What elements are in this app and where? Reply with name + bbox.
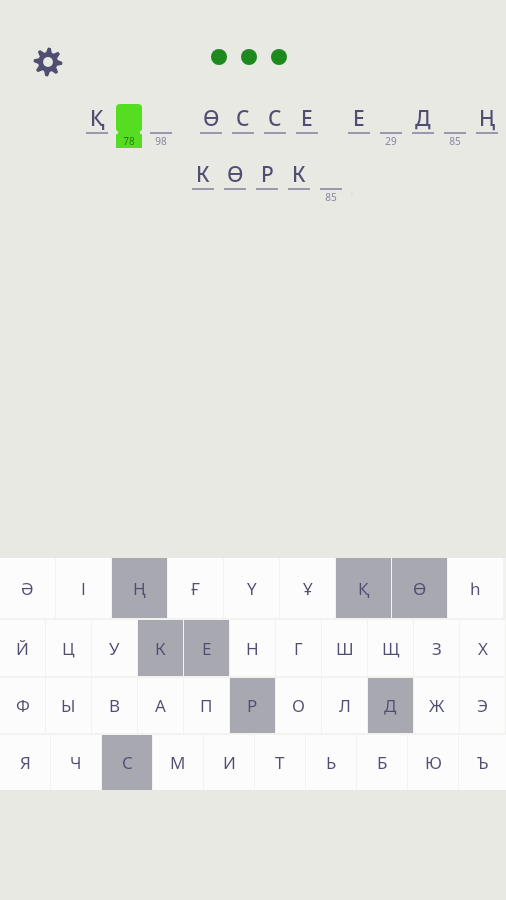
button[interactable]: І — [56, 558, 111, 618]
button[interactable]: Г — [276, 620, 321, 676]
button[interactable]: Қ — [84, 104, 110, 148]
staticText: Д — [415, 104, 431, 132]
staticText: С — [268, 104, 282, 132]
button[interactable]: В — [92, 678, 137, 733]
staticText: Ц — [62, 637, 75, 660]
staticText: Ъ — [477, 751, 489, 774]
staticText: Г — [294, 637, 303, 660]
button[interactable]: Settings — [30, 44, 66, 80]
staticText: Ү — [247, 577, 257, 600]
button[interactable]: Т — [255, 735, 305, 790]
button[interactable]: М — [153, 735, 203, 790]
staticText: . — [350, 180, 354, 199]
button[interactable]: Қ — [336, 558, 391, 618]
staticText: Л — [339, 694, 351, 717]
button[interactable]: Е — [346, 104, 372, 148]
staticText: Ө — [413, 577, 427, 600]
staticText: Ә — [21, 577, 34, 600]
button[interactable]: К — [190, 160, 216, 204]
button[interactable]: Ц — [46, 620, 91, 676]
button[interactable]: С — [230, 104, 256, 148]
staticText: Қ — [358, 577, 370, 600]
button[interactable]: Й — [0, 620, 45, 676]
staticText: Ф — [16, 694, 30, 717]
button[interactable]: П — [184, 678, 229, 733]
button[interactable]: Ө — [392, 558, 447, 618]
button[interactable]: Ы — [46, 678, 91, 733]
button[interactable]: К — [286, 160, 312, 204]
button[interactable]: Ң — [112, 558, 167, 618]
button[interactable]: Ъ — [459, 735, 506, 790]
button[interactable]: Д — [410, 104, 436, 148]
staticText: Б — [377, 751, 388, 774]
button[interactable]: Ч — [51, 735, 101, 790]
button[interactable]: Ю — [408, 735, 458, 790]
button[interactable]: Л — [322, 678, 367, 733]
staticText: З — [432, 637, 442, 660]
button[interactable]: Ө — [222, 160, 248, 204]
button[interactable]: С — [102, 735, 152, 790]
button[interactable]: Ш — [322, 620, 367, 676]
staticText: А — [155, 694, 166, 717]
staticText: Ж — [429, 694, 445, 717]
button[interactable]: Ф — [0, 678, 45, 733]
button[interactable]: Ь — [306, 735, 356, 790]
staticText: Ң — [479, 104, 496, 132]
button[interactable]: һ — [448, 558, 503, 618]
button[interactable]: Э — [460, 678, 505, 733]
button[interactable] — [211, 49, 287, 65]
button[interactable]: С — [262, 104, 288, 148]
button[interactable]: 98 — [148, 104, 174, 148]
staticText: Е — [202, 637, 212, 660]
button[interactable]: Н — [230, 620, 275, 676]
button[interactable]: А — [138, 678, 183, 733]
button[interactable]: Ү — [224, 558, 279, 618]
staticText: Э — [477, 694, 488, 717]
button[interactable]: Е — [184, 620, 229, 676]
button[interactable]: 85 — [318, 160, 344, 204]
staticText: И — [223, 751, 236, 774]
staticText: Ю — [425, 751, 442, 774]
staticText: Ғ — [191, 577, 201, 600]
staticText: Қ — [90, 104, 105, 132]
button[interactable]: Ж — [414, 678, 459, 733]
staticText: Р — [261, 160, 274, 188]
staticText: 29 — [385, 134, 397, 148]
button[interactable]: Ұ — [280, 558, 335, 618]
button[interactable]: Щ — [368, 620, 413, 676]
button[interactable]: З — [414, 620, 459, 676]
staticText: 98 — [155, 134, 167, 148]
button[interactable]: 29 — [378, 104, 404, 148]
staticText: Р — [247, 694, 258, 717]
staticText: Ө — [227, 160, 244, 188]
button[interactable]: Ң — [474, 104, 500, 148]
button[interactable]: Ғ — [168, 558, 223, 618]
staticText: Ұ — [303, 577, 313, 600]
button[interactable]: У — [92, 620, 137, 676]
button[interactable]: Я — [0, 735, 50, 790]
button[interactable]: Ө — [198, 104, 224, 148]
button[interactable]: Ә — [0, 558, 55, 618]
button[interactable]: Р — [254, 160, 280, 204]
staticText: Ш — [336, 637, 354, 660]
button[interactable]: 85 — [442, 104, 468, 148]
button[interactable]: Р — [230, 678, 275, 733]
button[interactable]: Д — [368, 678, 413, 733]
staticText: К — [155, 637, 166, 660]
staticText: П — [200, 694, 213, 717]
button[interactable]: О — [276, 678, 321, 733]
button[interactable]: Б — [357, 735, 407, 790]
button[interactable]: К — [138, 620, 183, 676]
staticText: К — [196, 160, 210, 188]
staticText: Е — [301, 104, 313, 132]
staticText: І — [81, 577, 86, 600]
staticText: Е — [353, 104, 365, 132]
button[interactable]: Х — [460, 620, 505, 676]
staticText: М — [170, 751, 186, 774]
staticText: Ч — [70, 751, 82, 774]
button[interactable]: 78 — [116, 104, 142, 148]
button[interactable]: И — [204, 735, 254, 790]
button[interactable]: Е — [294, 104, 320, 148]
staticText: Д — [384, 694, 397, 717]
staticText: Ң — [133, 577, 146, 600]
